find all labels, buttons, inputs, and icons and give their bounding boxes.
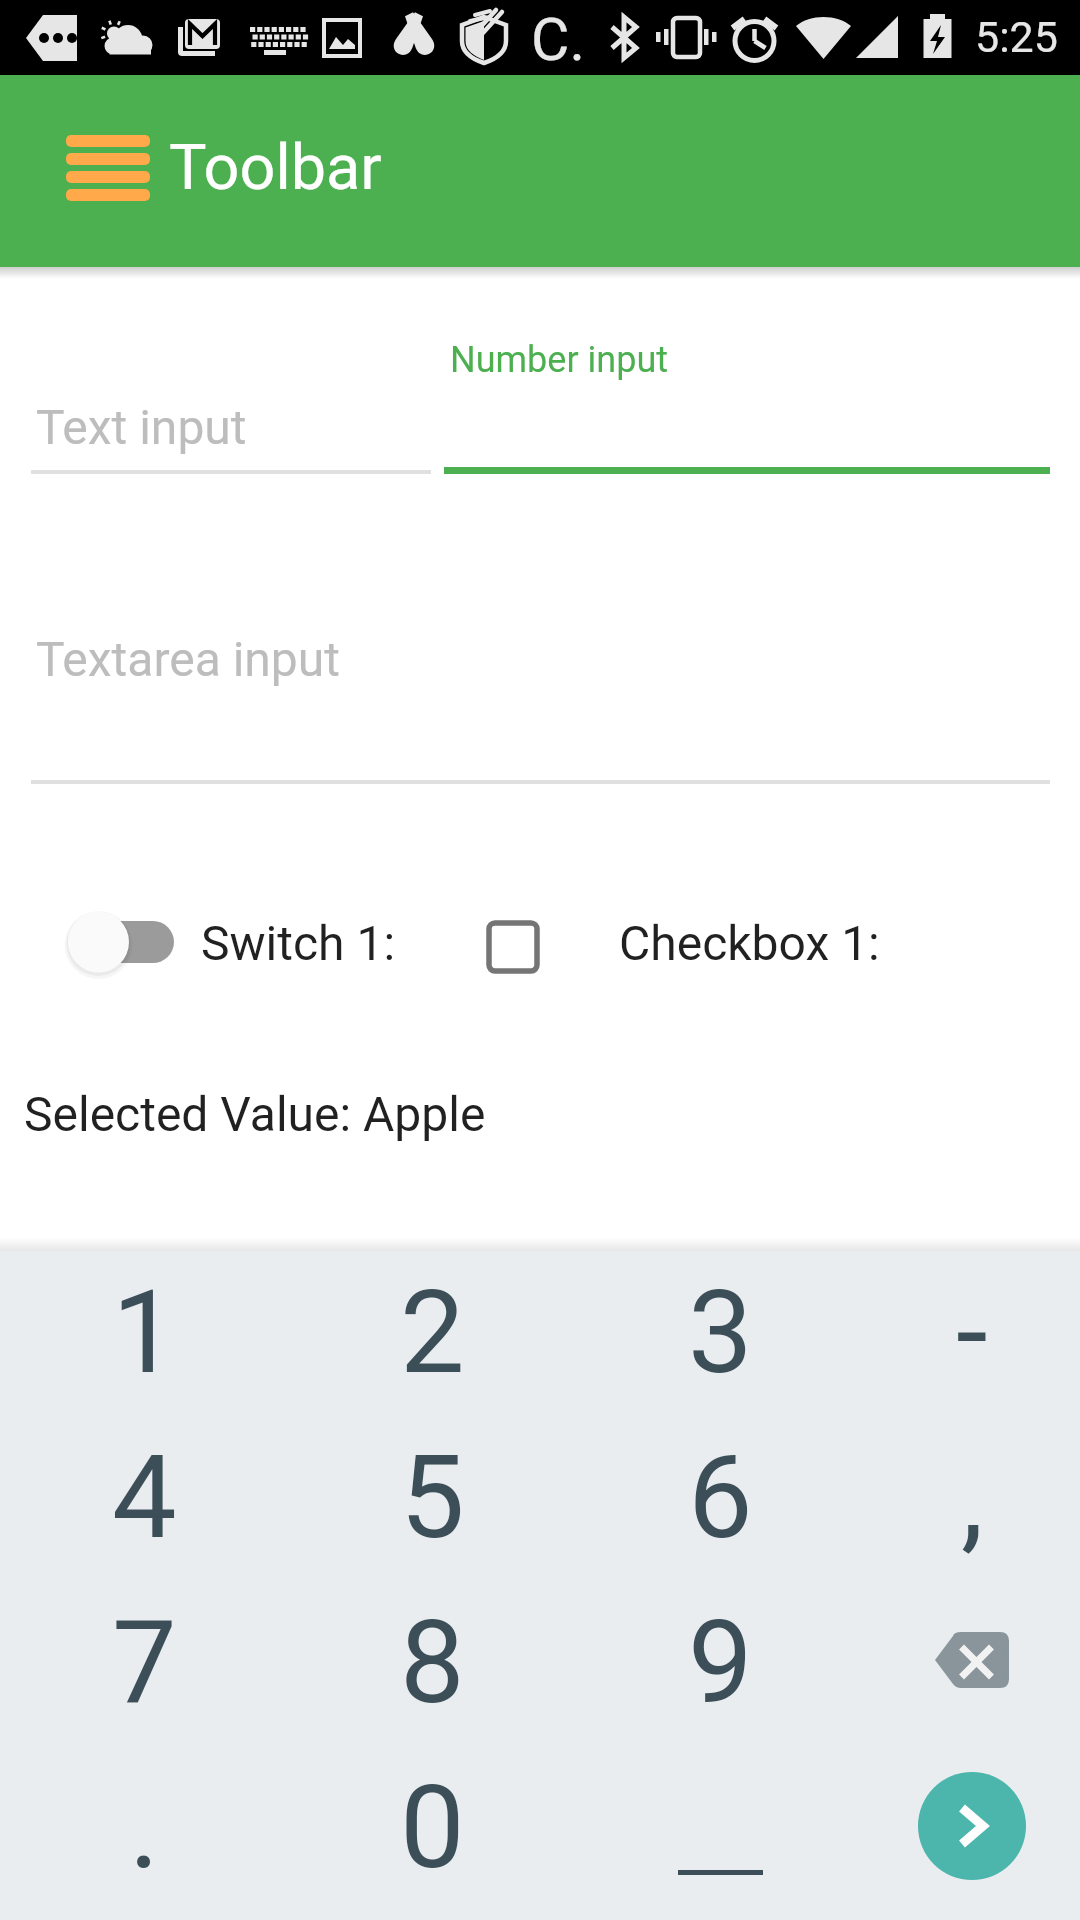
button[interactable]: 3: [576, 1250, 864, 1415]
staticText: 5: [400, 1430, 465, 1565]
staticText: .: [129, 1760, 160, 1895]
button[interactable]: 2: [288, 1250, 576, 1415]
button[interactable]: 0: [288, 1745, 576, 1910]
staticText: Textarea input: [36, 631, 340, 687]
button[interactable]: 8: [288, 1580, 576, 1745]
staticText: 5:25: [975, 12, 1058, 62]
button[interactable]: Open navigation menu: [66, 135, 150, 201]
button[interactable]: -: [864, 1250, 1080, 1415]
other: Space: [660, 1773, 780, 1883]
staticText: Toolbar: [169, 131, 382, 205]
button[interactable]: Selected Value: Apple: [24, 1086, 486, 1142]
staticText: Checkbox 1:: [619, 915, 880, 971]
staticText: Switch 1:: [201, 915, 396, 971]
staticText: 9: [688, 1595, 753, 1730]
button[interactable]: 5: [288, 1415, 576, 1580]
button[interactable]: 9: [576, 1580, 864, 1745]
staticText: Number input: [450, 339, 669, 381]
staticText: C.: [531, 5, 585, 74]
button[interactable]: Number input: [444, 339, 1050, 474]
other: Go: [918, 1772, 1026, 1880]
staticText: 3: [688, 1265, 753, 1400]
staticText: 0: [400, 1760, 465, 1895]
staticText: -: [956, 1265, 988, 1400]
staticText: 8: [400, 1595, 465, 1730]
staticText: 6: [688, 1430, 753, 1565]
button[interactable]: Space: [576, 1745, 864, 1910]
button[interactable]: Checkbox 1:: [480, 906, 880, 990]
button[interactable]: 4: [0, 1415, 288, 1580]
staticText: Text input: [36, 399, 247, 455]
button[interactable]: Go: [864, 1745, 1080, 1910]
button[interactable]: 7: [0, 1580, 288, 1745]
button[interactable]: Switch 1:: [60, 906, 396, 990]
button[interactable]: Textarea input: [31, 631, 1050, 784]
button[interactable]: Text input: [31, 399, 431, 474]
staticText: ,: [961, 1430, 984, 1565]
staticText: 2: [400, 1265, 465, 1400]
button[interactable]: 1: [0, 1250, 288, 1415]
button[interactable]: 6: [576, 1415, 864, 1580]
staticText: 1: [112, 1265, 177, 1400]
button[interactable]: ,: [864, 1415, 1080, 1580]
button[interactable]: .: [0, 1745, 288, 1910]
other: Backspace: [935, 1632, 1009, 1688]
staticText: 4: [112, 1430, 177, 1565]
button[interactable]: Backspace: [864, 1580, 1080, 1745]
staticText: 7: [112, 1595, 177, 1730]
